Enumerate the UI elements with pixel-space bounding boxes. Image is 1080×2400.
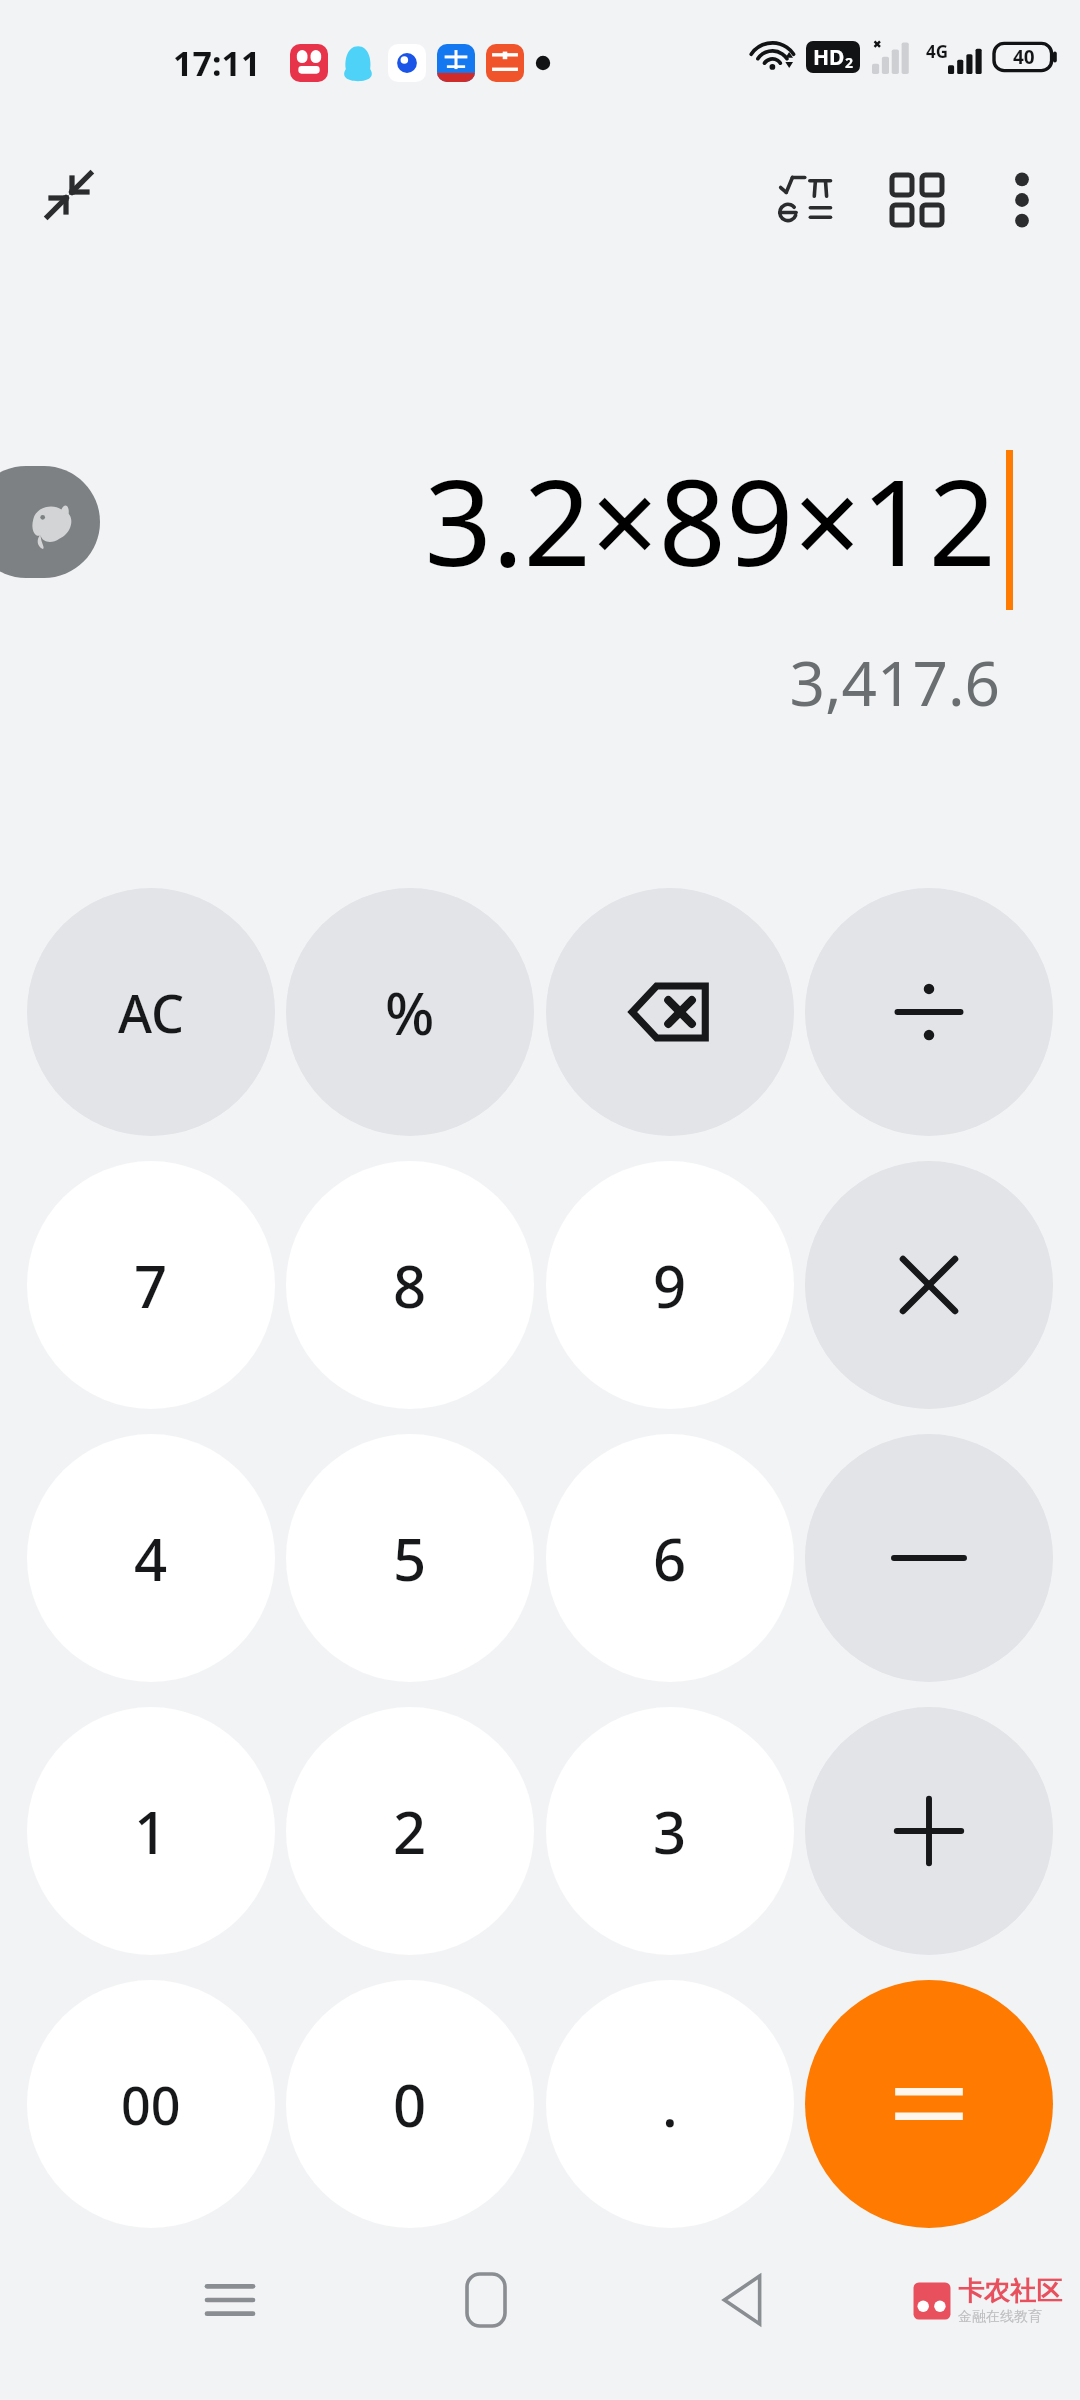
staticText: 0 [393,2065,427,2144]
button[interactable]: 7 [27,1161,275,1409]
staticText: 8 [393,1246,427,1325]
staticText: . [662,2065,678,2144]
staticText: AC [118,977,185,1048]
button[interactable]: Home [426,2240,546,2360]
button[interactable]: 1 [27,1707,275,1955]
button[interactable]: Add [805,1707,1053,1955]
button[interactable]: Floating window handle [0,466,100,578]
button[interactable]: 8 [286,1161,534,1409]
staticText: 3 [653,1792,687,1871]
button[interactable]: 0 [286,1980,534,2228]
button[interactable]: AC [27,888,275,1136]
staticText: 2 [845,53,854,72]
button[interactable]: 5 [286,1434,534,1682]
staticText: 2 [393,1792,427,1871]
button[interactable]: More options [972,150,1072,250]
button[interactable]: 3 [546,1707,794,1955]
button[interactable]: Collapse [14,140,124,250]
button[interactable]: 2 [286,1707,534,1955]
staticText: 3.2×89×12 [0,440,996,601]
staticText: HD [813,43,845,72]
button[interactable]: Backspace [546,888,794,1136]
button[interactable]: Scientific [752,145,862,255]
button[interactable]: Back [682,2240,802,2360]
button[interactable]: . [546,1980,794,2228]
button[interactable]: 4 [27,1434,275,1682]
staticText: 6 [653,1519,687,1598]
staticText: 卡农社区 [958,2275,1062,2308]
button[interactable]: Equals [805,1980,1053,2228]
staticText: % [385,973,435,1052]
staticText: 7 [134,1246,168,1325]
staticText: 金融在线教育 [958,2308,1042,2326]
button[interactable]: Conversions [862,145,972,255]
button[interactable]: Subtract [805,1434,1053,1682]
staticText: 40 [1013,44,1035,70]
button[interactable]: % [286,888,534,1136]
button[interactable]: 9 [546,1161,794,1409]
button[interactable]: Multiply [805,1161,1053,1409]
staticText: 17:11 [173,40,261,86]
staticText: 9 [653,1246,687,1325]
button[interactable]: Divide [805,888,1053,1136]
staticText: 00 [121,2069,181,2140]
button[interactable]: Recent apps [170,2240,290,2360]
staticText: 4G [926,40,949,63]
staticText: 4 [134,1519,168,1598]
button[interactable]: 00 [27,1980,275,2228]
staticText: 1 [134,1792,168,1871]
button[interactable]: 6 [546,1434,794,1682]
staticText: 5 [393,1519,427,1598]
staticText: 3,417.6 [0,640,1000,724]
